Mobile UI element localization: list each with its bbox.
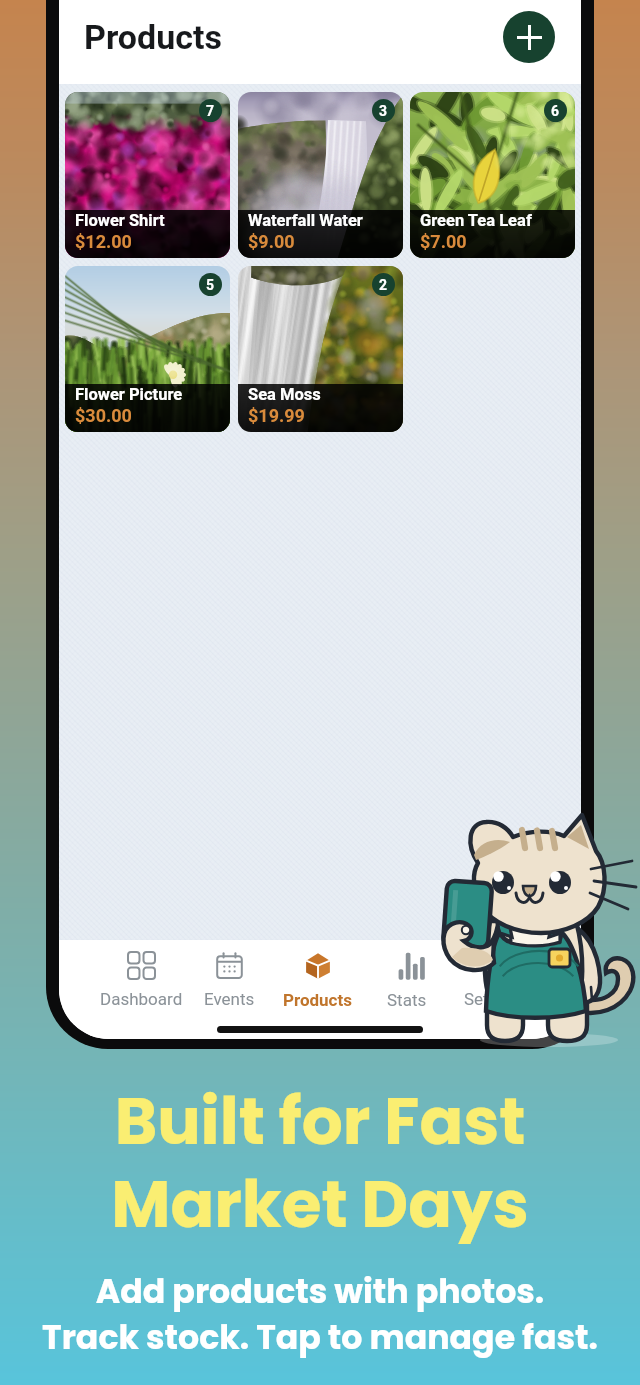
staticText: Products	[283, 990, 352, 1010]
button[interactable]: Stats	[385, 952, 429, 1010]
staticText: Built for Fast Market Days	[111, 1076, 529, 1250]
button[interactable]: Add product	[503, 11, 555, 63]
staticText: Stats	[387, 990, 427, 1010]
staticText: Green Tea Leaf	[420, 211, 532, 230]
staticText: $12.00	[75, 231, 132, 252]
staticText: Flower Picture	[75, 385, 183, 404]
staticText: $7.00	[420, 231, 467, 252]
staticText: 2	[379, 277, 388, 293]
button[interactable]: Flower Picture	[65, 266, 230, 432]
staticText: Settings	[464, 989, 527, 1009]
button[interactable]: Sea Moss	[238, 266, 403, 432]
button[interactable]: Products	[281, 952, 354, 1010]
button[interactable]: Green Tea Leaf	[410, 92, 575, 258]
staticText: $19.99	[248, 405, 305, 426]
staticText: $9.00	[248, 231, 295, 252]
staticText: Dashboard	[100, 989, 183, 1009]
button[interactable]: Events	[202, 952, 257, 1009]
button[interactable]: Settings	[462, 952, 529, 1009]
button[interactable]: Dashboard	[98, 952, 185, 1009]
staticText: 3	[379, 103, 388, 119]
staticText: 6	[551, 103, 560, 119]
staticText: $30.00	[75, 405, 132, 426]
staticText: Sea Moss	[248, 385, 321, 404]
staticText: Waterfall Water	[248, 211, 363, 230]
staticText: Add products with photos. Track stock. T…	[42, 1268, 598, 1361]
staticText: Products	[84, 17, 222, 57]
staticText: Events	[204, 989, 255, 1009]
staticText: Flower Shirt	[75, 211, 165, 230]
button[interactable]: Flower Shirt	[65, 92, 230, 258]
button[interactable]: Waterfall Water	[238, 92, 403, 258]
staticText: 7	[206, 103, 215, 119]
staticText: 5	[206, 277, 215, 293]
